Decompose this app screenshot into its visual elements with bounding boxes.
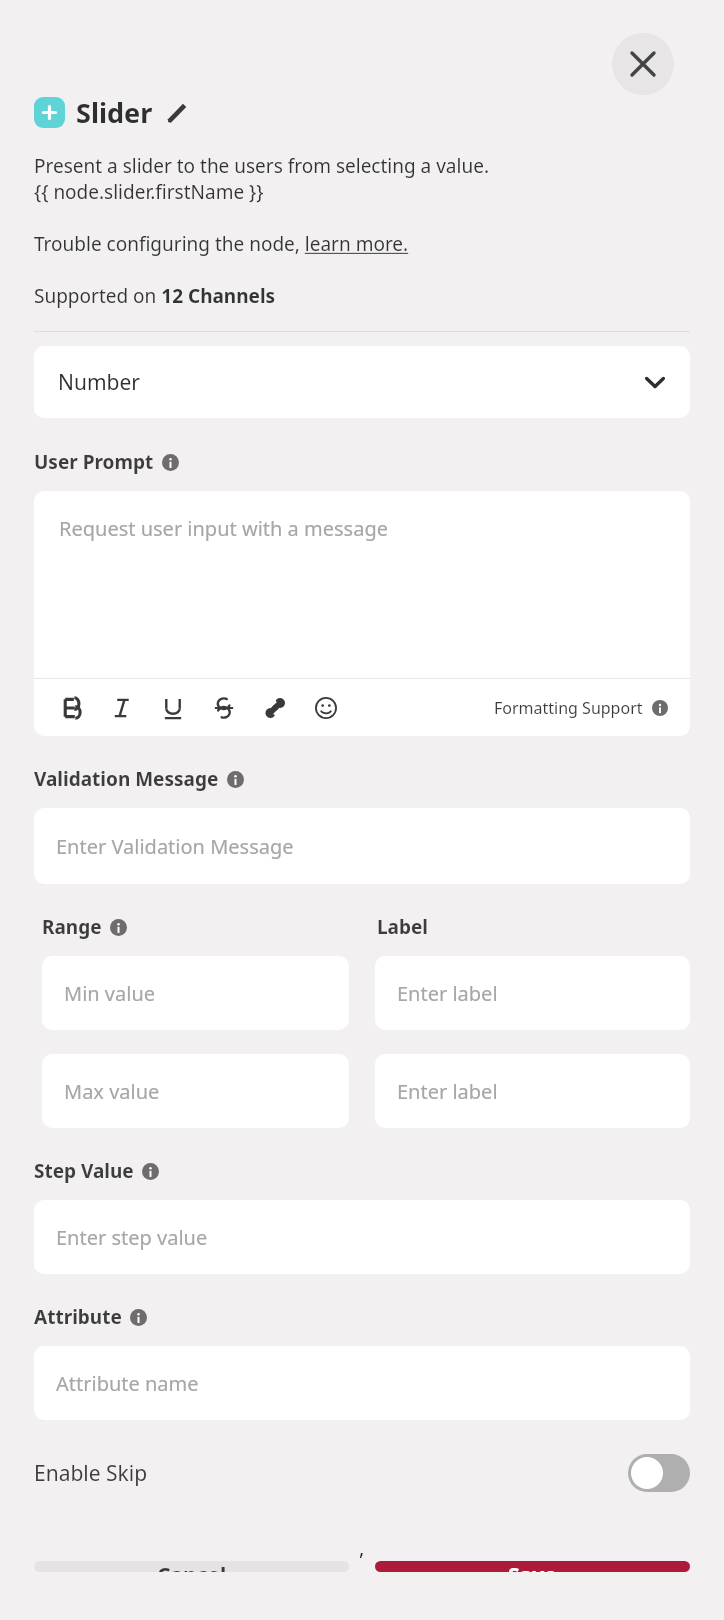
staticText: Enter step value	[56, 1224, 208, 1251]
staticText: Save	[508, 1561, 557, 1572]
button[interactable]: Min value	[42, 956, 349, 1030]
button[interactable]: Enter label	[375, 1054, 690, 1128]
button[interactable]: Cancel	[34, 1561, 349, 1572]
staticText: Attribute	[34, 1304, 122, 1330]
button[interactable]: Strikethrough	[209, 693, 239, 723]
staticText: Number	[58, 368, 141, 397]
staticText: ,	[359, 1534, 365, 1561]
staticText: Enable Skip	[34, 1459, 148, 1488]
staticText: Label	[377, 914, 429, 940]
button[interactable]: Insert link	[260, 693, 290, 723]
button[interactable]: Bold	[56, 693, 86, 723]
staticText: Present a slider to the users from selec…	[34, 153, 690, 205]
button[interactable]: Number	[34, 346, 690, 418]
staticText: Step Value	[34, 1158, 134, 1184]
staticText: Enter label	[397, 1078, 498, 1105]
button[interactable]: Attribute name	[34, 1346, 690, 1420]
button[interactable]: Close	[612, 33, 674, 95]
staticText: Enter Validation Message	[56, 833, 294, 860]
button[interactable]: Save	[375, 1561, 690, 1572]
staticText: Slider	[76, 94, 153, 131]
button[interactable]: Formatting Support	[494, 697, 668, 719]
button[interactable]: Enter label	[375, 956, 690, 1030]
staticText: Formatting Support	[494, 697, 643, 719]
button[interactable]: Edit name	[165, 101, 189, 125]
staticText: Request user input with a message	[59, 515, 388, 542]
staticText: Enter label	[397, 980, 498, 1007]
button[interactable]: Enter Validation Message	[34, 808, 690, 884]
button[interactable]: Max value	[42, 1054, 349, 1128]
staticText: Min value	[64, 980, 156, 1007]
button[interactable]: Request user input with a message	[34, 491, 690, 678]
staticText: User Prompt	[34, 449, 154, 475]
staticText: Attribute name	[56, 1370, 199, 1397]
staticText: Supported on 12 Channels	[34, 283, 276, 309]
button[interactable]: Enable Skip	[34, 1448, 690, 1498]
button[interactable]: Underline	[158, 693, 188, 723]
staticText: Validation Message	[34, 766, 219, 792]
staticText: Range	[42, 914, 102, 940]
button[interactable]: Enter step value	[34, 1200, 690, 1274]
staticText: Cancel	[157, 1561, 227, 1572]
button[interactable]: Emoji	[311, 693, 341, 723]
staticText: Trouble configuring the node, learn more…	[34, 231, 409, 257]
staticText: Max value	[64, 1078, 160, 1105]
button[interactable]: Italic	[107, 693, 137, 723]
